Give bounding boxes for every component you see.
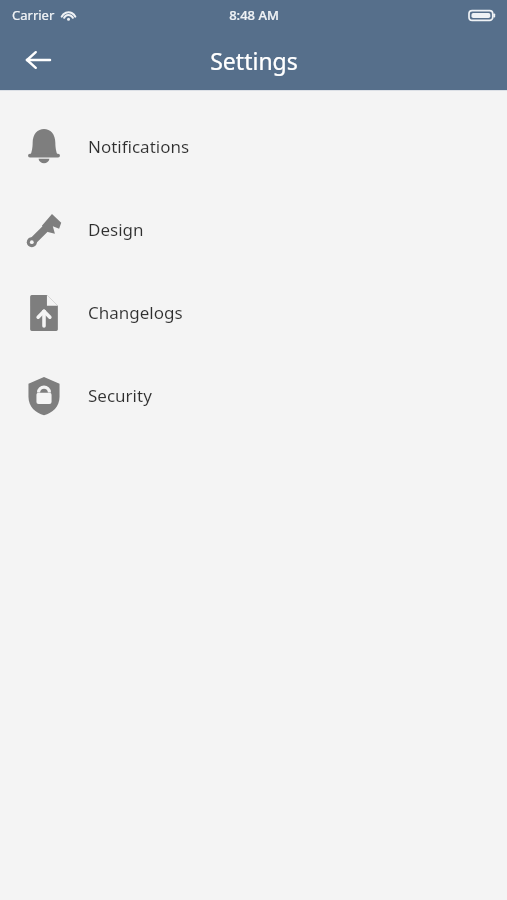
button[interactable]: Back: [10, 32, 66, 88]
staticText: Settings: [210, 45, 298, 76]
staticText: Notifications: [88, 135, 190, 158]
staticText: Security: [88, 384, 152, 407]
staticText: Carrier: [12, 6, 55, 24]
staticText: Design: [88, 218, 144, 241]
button[interactable]: Notifications: [0, 105, 507, 188]
button[interactable]: Design: [0, 188, 507, 271]
button[interactable]: Security: [0, 354, 507, 437]
staticText: Changelogs: [88, 301, 183, 324]
staticText: 8:48 AM: [229, 6, 279, 24]
button[interactable]: Changelogs: [0, 271, 507, 354]
